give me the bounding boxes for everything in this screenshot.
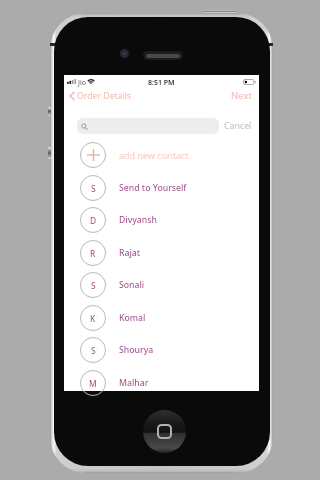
staticText: S (91, 280, 96, 291)
staticText: Divyansh (119, 214, 157, 226)
staticText: M (89, 378, 97, 389)
button[interactable]: S (64, 337, 259, 363)
button[interactable]: S (64, 175, 259, 201)
button[interactable]: Home (143, 410, 186, 453)
staticText: D (90, 215, 97, 226)
button[interactable]: Next (224, 88, 259, 103)
button[interactable]: S (64, 272, 259, 298)
staticText: Malhar (119, 377, 149, 389)
button[interactable]: Cancel (220, 118, 256, 134)
staticText: R (90, 248, 96, 259)
staticText: Rajat (119, 247, 141, 259)
button[interactable]: M (64, 370, 259, 396)
staticText: Order Details (77, 90, 132, 102)
staticText: Komal (119, 312, 146, 324)
staticText: Cancel (224, 120, 252, 132)
button[interactable]: Order Details (67, 88, 138, 103)
button[interactable]: K (64, 305, 259, 331)
button[interactable]: add new contact (64, 142, 259, 168)
staticText: Jio (78, 78, 86, 88)
staticText: add new contact (119, 149, 189, 161)
button[interactable]: D (64, 207, 259, 233)
staticText: S (91, 183, 96, 194)
staticText: Shourya (119, 344, 154, 356)
staticText: 8:51 PM (148, 78, 175, 88)
button[interactable]: R (64, 240, 259, 266)
staticText: K (90, 313, 96, 324)
button[interactable]: Search (77, 118, 219, 134)
staticText: Sonali (119, 279, 145, 291)
staticText: Send to Yourself (119, 182, 187, 194)
staticText: Next (231, 89, 252, 102)
staticText: S (91, 345, 96, 356)
